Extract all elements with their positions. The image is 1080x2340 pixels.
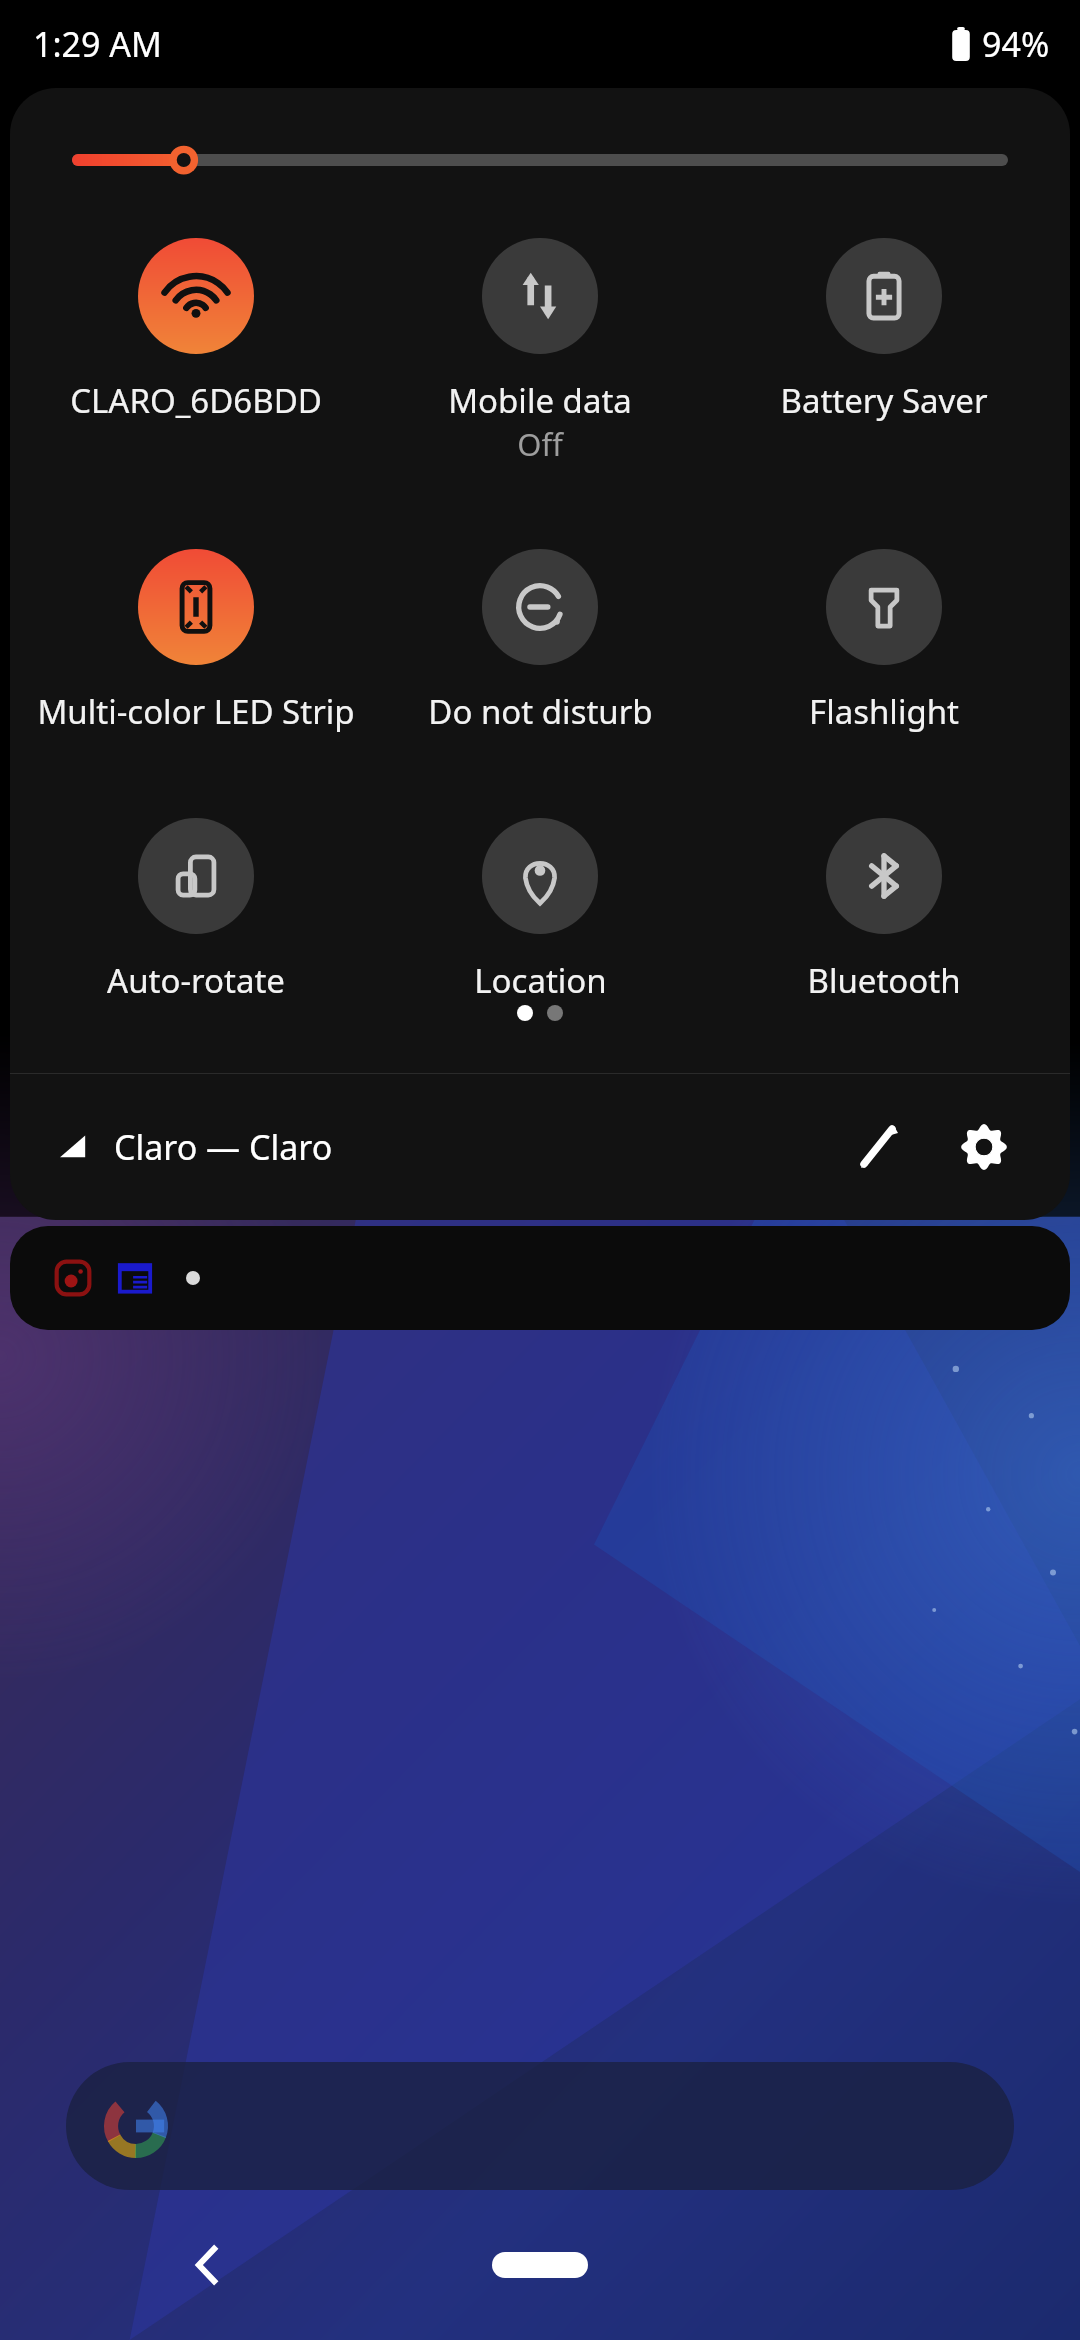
staticText: Mobile data [448, 378, 632, 423]
button[interactable]: Edit tiles [840, 1109, 916, 1185]
button[interactable]: Search [66, 2062, 1014, 2190]
button[interactable]: Back [168, 2225, 248, 2305]
button[interactable]: Claro — Claro [114, 1124, 333, 1170]
button[interactable]: Home [492, 2252, 588, 2278]
button[interactable]: Mobile data [368, 238, 712, 465]
staticText: Auto-rotate [107, 958, 285, 1003]
button[interactable] [10, 1226, 1070, 1330]
staticText: 1:29 AM [33, 21, 162, 67]
staticText: Off [517, 423, 563, 465]
button[interactable]: Multi-color LED Strip [24, 549, 368, 734]
button[interactable]: Flashlight [712, 549, 1056, 734]
staticText: Bluetooth [807, 958, 961, 1003]
staticText: CLARO_6D6BDD [70, 378, 322, 423]
button[interactable]: Auto-rotate [24, 818, 368, 1003]
staticText: Flashlight [809, 689, 959, 734]
staticText: Do not disturb [428, 689, 653, 734]
button[interactable]: Bluetooth [712, 818, 1056, 1003]
button[interactable]: Battery Saver [712, 238, 1056, 423]
staticText: Battery Saver [780, 378, 988, 423]
button[interactable]: CLARO_6D6BDD [24, 238, 368, 423]
staticText: 94% [982, 21, 1050, 67]
button[interactable]: Settings [946, 1109, 1022, 1185]
button[interactable]: Do not disturb [368, 549, 712, 734]
staticText: Location [474, 958, 607, 1003]
button[interactable]: Location [368, 818, 712, 1003]
staticText: Multi-color LED Strip [37, 689, 355, 734]
